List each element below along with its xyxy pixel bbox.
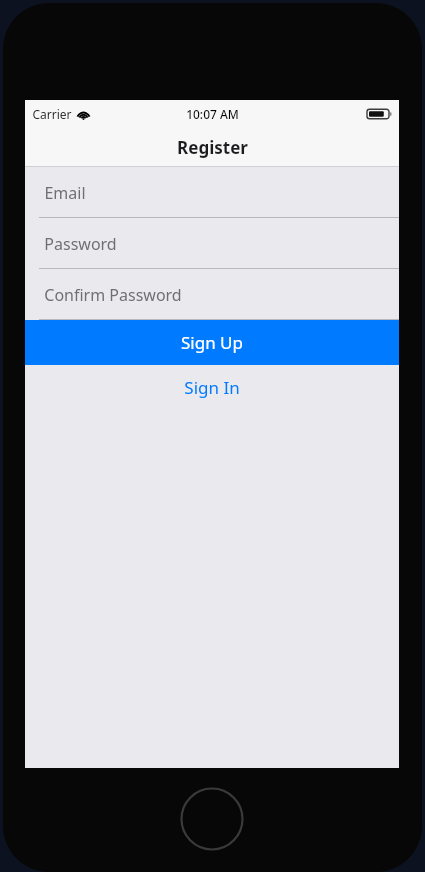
staticText: Confirm Password xyxy=(44,284,182,306)
button[interactable]: Sign In xyxy=(25,365,399,410)
staticText: Password xyxy=(44,233,117,255)
other: Home xyxy=(180,787,244,851)
button[interactable]: Password xyxy=(25,218,399,269)
staticText: Carrier xyxy=(32,106,72,122)
staticText: Register xyxy=(177,136,248,159)
staticText: 10:07 AM xyxy=(186,106,239,122)
staticText: Sign In xyxy=(184,376,240,399)
button[interactable]: Email xyxy=(25,167,399,218)
staticText: Sign Up xyxy=(181,331,243,354)
staticText: Email xyxy=(44,182,86,204)
button[interactable]: Confirm Password xyxy=(25,269,399,320)
button[interactable]: Sign Up xyxy=(25,320,399,365)
